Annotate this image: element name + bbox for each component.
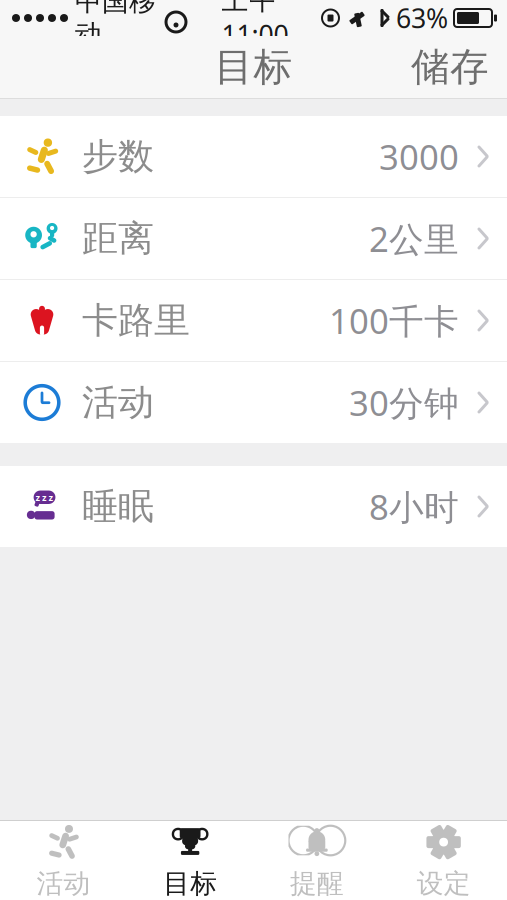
staticText: 卡路里 bbox=[82, 298, 190, 343]
staticText: 睡眠 bbox=[82, 484, 154, 529]
staticText: 8小时 bbox=[369, 483, 459, 529]
staticText: 30分钟 bbox=[349, 379, 459, 425]
staticText: 3000 bbox=[379, 133, 459, 179]
staticText: 储存 bbox=[411, 43, 489, 91]
staticText: z bbox=[42, 491, 47, 503]
button[interactable]: z bbox=[0, 466, 507, 547]
button[interactable]: 提醒 bbox=[253, 820, 380, 900]
staticText: 设定 bbox=[417, 867, 471, 900]
staticText: z bbox=[36, 491, 41, 503]
staticText: 距离 bbox=[82, 216, 154, 261]
button[interactable]: 步数 bbox=[0, 116, 507, 197]
button[interactable]: 活动 bbox=[0, 362, 507, 443]
staticText: 步数 bbox=[82, 134, 154, 179]
button[interactable]: 设定 bbox=[380, 820, 507, 900]
button[interactable]: 卡路里 bbox=[0, 280, 507, 361]
staticText: 63% bbox=[396, 0, 448, 36]
button[interactable]: 活动 bbox=[0, 820, 127, 900]
button[interactable]: 储存 bbox=[411, 33, 507, 101]
button[interactable]: 目标 bbox=[127, 820, 254, 900]
staticText: 100千卡 bbox=[329, 297, 459, 343]
staticText: 活动 bbox=[36, 867, 90, 900]
staticText: 目标 bbox=[214, 43, 292, 91]
staticText: 上午11:00 bbox=[221, 0, 288, 52]
staticText: 活动 bbox=[82, 380, 154, 425]
staticText: 提醒 bbox=[290, 867, 344, 900]
staticText: 2公里 bbox=[369, 215, 459, 261]
button[interactable]: 距离 bbox=[0, 198, 507, 279]
staticText: 目标 bbox=[163, 867, 217, 900]
staticText: z bbox=[48, 491, 53, 503]
staticText: 中国移动 bbox=[75, 0, 156, 51]
